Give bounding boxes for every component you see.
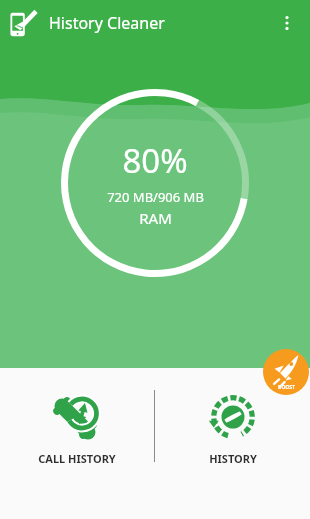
button[interactable]: HISTORY bbox=[155, 390, 310, 466]
staticText: BOOST bbox=[278, 384, 295, 391]
staticText: RAM bbox=[139, 208, 172, 228]
other: App icon bbox=[8, 8, 38, 38]
staticText: 720 MB/906 MB bbox=[107, 188, 204, 206]
button[interactable]: CALL HISTORY bbox=[0, 390, 154, 466]
button[interactable]: Boost bbox=[263, 349, 309, 395]
staticText: CALL HISTORY bbox=[38, 451, 116, 466]
button[interactable]: More options bbox=[270, 6, 304, 40]
staticText: History Cleaner bbox=[49, 12, 165, 34]
staticText: 80% bbox=[122, 138, 188, 183]
staticText: HISTORY bbox=[209, 451, 257, 466]
